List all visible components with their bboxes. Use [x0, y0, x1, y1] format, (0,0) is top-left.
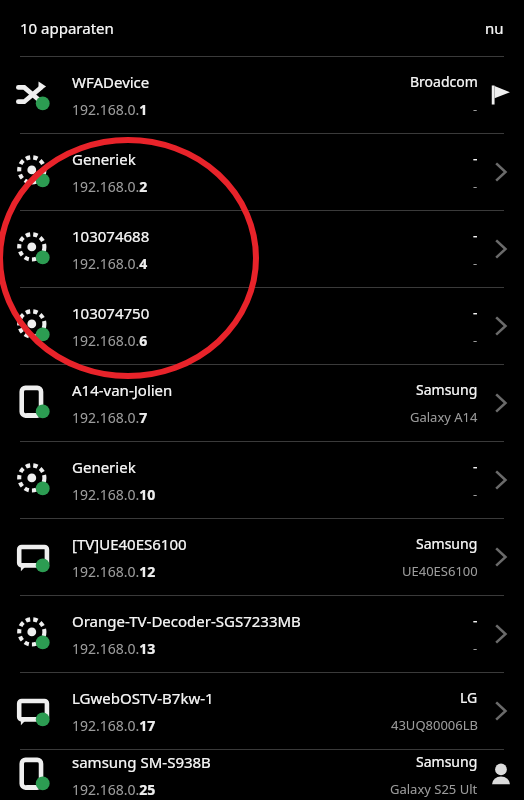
staticText: 43UQ80006LB — [391, 716, 478, 734]
button[interactable]: WFADevice — [0, 57, 524, 133]
staticText: 103074688 — [72, 226, 150, 246]
staticText: Generiek — [72, 457, 136, 477]
staticText: - — [473, 485, 478, 503]
staticText: 192.168.0.7 — [72, 408, 148, 427]
button[interactable]: 103074688 — [0, 211, 524, 287]
staticText: 192.168.0.25 — [72, 780, 156, 799]
button[interactable]: Open device details — [478, 673, 524, 749]
staticText: - — [473, 639, 478, 657]
staticText: Samsung — [416, 752, 478, 771]
staticText: - — [473, 331, 478, 349]
staticText: - — [473, 457, 478, 476]
staticText: Samsung — [416, 534, 478, 553]
staticText: 192.168.0.12 — [72, 562, 156, 581]
staticText: 192.168.0.1 — [72, 100, 148, 119]
button[interactable]: samsung SM-S938B — [0, 750, 524, 800]
staticText: - — [473, 611, 478, 630]
button[interactable]: Open device details — [478, 134, 524, 210]
staticText: Orange-TV-Decoder-SGS7233MB — [72, 611, 301, 631]
button[interactable]: Flag device — [478, 57, 524, 133]
staticText: Galaxy S25 Ult — [390, 780, 478, 798]
staticText: 192.168.0.17 — [72, 716, 156, 735]
staticText: LGwebOSTV-B7kw-1 — [72, 688, 214, 708]
staticText: A14-van-Jolien — [72, 380, 173, 400]
staticText: LG — [460, 688, 478, 707]
staticText: UE40ES6100 — [402, 562, 478, 580]
button[interactable]: Open device details — [478, 211, 524, 287]
staticText: Broadcom — [410, 72, 478, 91]
staticText: 192.168.0.10 — [72, 485, 156, 504]
staticText: - — [473, 303, 478, 322]
staticText: - — [473, 149, 478, 168]
staticText: nu — [485, 18, 504, 38]
staticText: 192.168.0.6 — [72, 331, 148, 350]
button[interactable]: Open device details — [478, 519, 524, 595]
button[interactable]: Open device details — [478, 596, 524, 672]
button[interactable]: A14-van-Jolien — [0, 365, 524, 441]
button[interactable]: Open device details — [478, 442, 524, 518]
staticText: samsung SM-S938B — [72, 752, 211, 772]
staticText: - — [473, 226, 478, 245]
button[interactable]: Generiek — [0, 442, 524, 518]
staticText: 192.168.0.4 — [72, 254, 148, 273]
button[interactable]: 103074750 — [0, 288, 524, 364]
button[interactable]: Open device details — [478, 365, 524, 441]
staticText: Galaxy A14 — [410, 408, 478, 426]
staticText: - — [473, 177, 478, 195]
button[interactable]: This device — [478, 750, 524, 800]
staticText: [TV]UE40ES6100 — [72, 534, 187, 554]
button[interactable]: [TV]UE40ES6100 — [0, 519, 524, 595]
button[interactable]: Orange-TV-Decoder-SGS7233MB — [0, 596, 524, 672]
staticText: 10 apparaten — [20, 18, 114, 38]
button[interactable]: Open device details — [478, 288, 524, 364]
button[interactable]: LGwebOSTV-B7kw-1 — [0, 673, 524, 749]
staticText: 103074750 — [72, 303, 150, 323]
staticText: - — [473, 254, 478, 272]
staticText: WFADevice — [72, 72, 150, 92]
staticText: Samsung — [416, 380, 478, 399]
staticText: 192.168.0.13 — [72, 639, 156, 658]
staticText: - — [473, 100, 478, 118]
button[interactable]: Generiek — [0, 134, 524, 210]
staticText: Generiek — [72, 149, 136, 169]
staticText: 192.168.0.2 — [72, 177, 148, 196]
